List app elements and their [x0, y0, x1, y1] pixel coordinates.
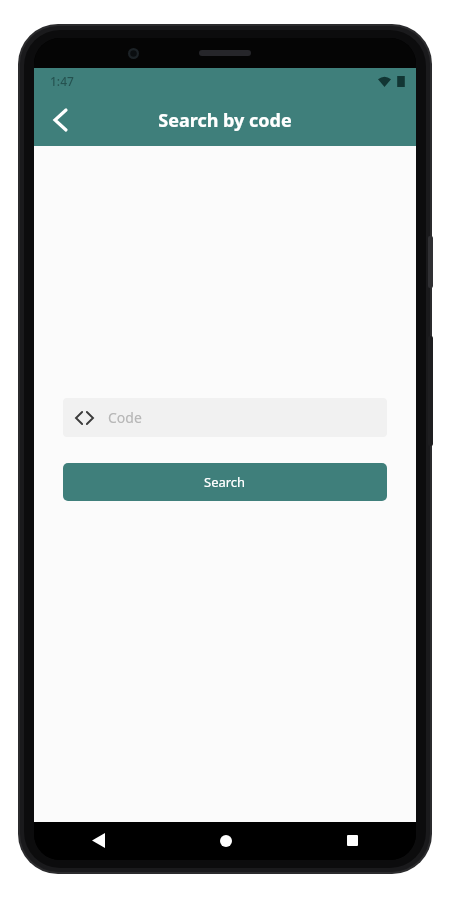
staticText: 1:47: [50, 73, 74, 89]
button[interactable]: Search: [63, 463, 387, 501]
staticText: Search: [204, 473, 246, 491]
staticText: Search by code: [158, 108, 292, 133]
button[interactable]: Back: [38, 98, 82, 142]
staticText: Code: [108, 408, 142, 427]
button[interactable]: Back: [34, 822, 162, 859]
button[interactable]: Recent apps: [289, 822, 416, 859]
button[interactable]: Code: [63, 398, 387, 437]
button[interactable]: Home: [162, 822, 289, 859]
